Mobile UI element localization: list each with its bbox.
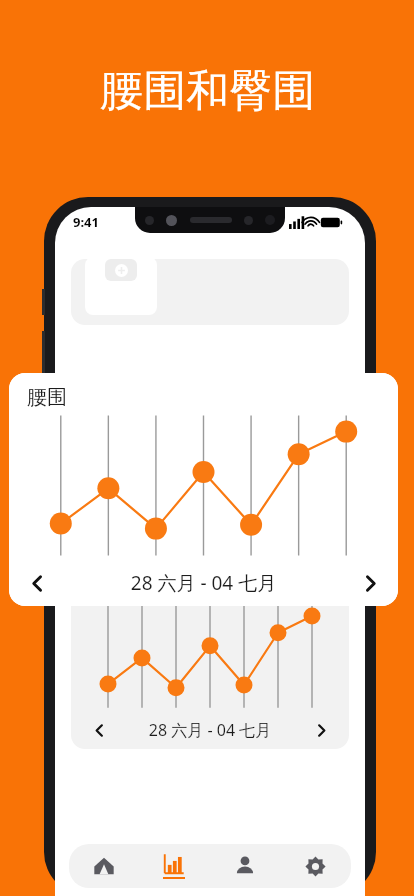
staticText: 9:41 xyxy=(73,213,99,231)
staticText: 28 六月 - 04 七月 xyxy=(65,570,342,596)
button[interactable] xyxy=(71,259,349,325)
button[interactable]: Charts xyxy=(139,844,209,888)
button[interactable]: Previous week xyxy=(9,560,65,606)
button[interactable]: Settings xyxy=(280,844,351,888)
button[interactable]: Home xyxy=(69,844,139,888)
button[interactable]: Next week xyxy=(293,711,349,749)
button[interactable]: Previous week xyxy=(71,711,127,749)
staticText: 28 六月 - 04 七月 xyxy=(127,719,293,741)
staticText: 腰围 xyxy=(27,385,67,410)
button[interactable]: Next week xyxy=(342,560,398,606)
button[interactable]: Profile xyxy=(209,844,280,888)
staticText: 腰围和臀围 xyxy=(100,64,315,118)
